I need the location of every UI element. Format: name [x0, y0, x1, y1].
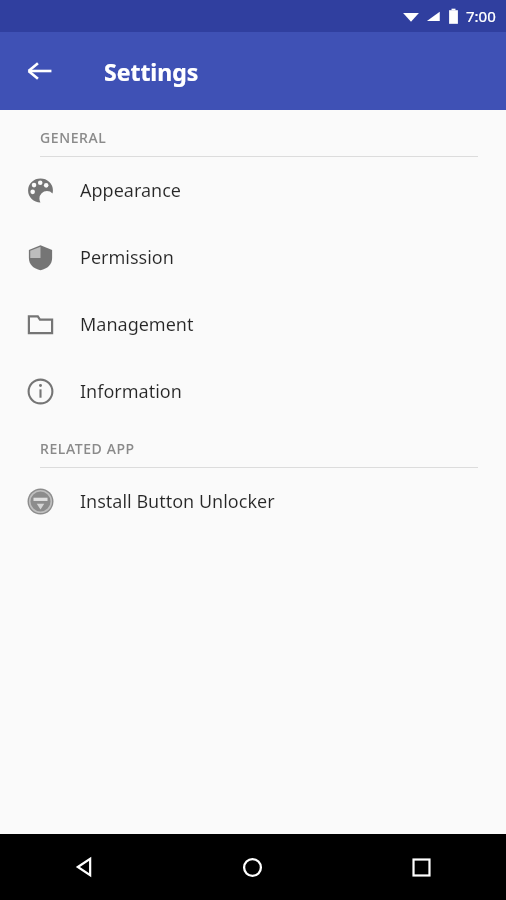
button[interactable]: Back	[0, 834, 168, 900]
staticText: GENERAL	[40, 128, 107, 147]
button[interactable]: Recent apps	[337, 834, 506, 900]
button[interactable]: Appearance	[0, 157, 506, 224]
staticText: Management	[80, 312, 194, 337]
staticText: Settings	[104, 56, 199, 87]
staticText: Permission	[80, 245, 174, 270]
staticText: Information	[80, 379, 182, 404]
staticText: RELATED APP	[40, 439, 135, 458]
staticText: Install Button Unlocker	[80, 489, 275, 514]
button[interactable]: Install Button Unlocker	[0, 468, 506, 535]
button[interactable]: Home	[168, 834, 337, 900]
button[interactable]: Management	[0, 291, 506, 358]
staticText: 7:00	[466, 6, 496, 26]
button[interactable]: Permission	[0, 224, 506, 291]
staticText: Appearance	[80, 178, 181, 203]
button[interactable]: Back	[14, 45, 66, 97]
button[interactable]: Information	[0, 358, 506, 425]
